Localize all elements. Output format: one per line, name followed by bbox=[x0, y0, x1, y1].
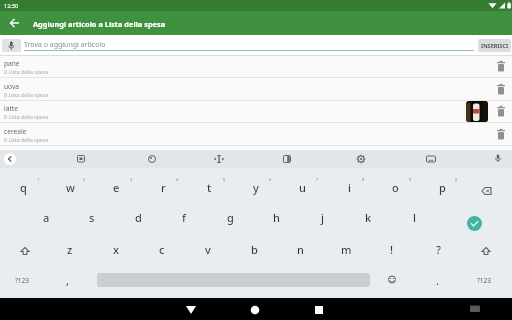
button[interactable] bbox=[494, 104, 508, 119]
button[interactable] bbox=[467, 216, 482, 231]
staticText: n bbox=[297, 242, 304, 257]
button[interactable]: uova bbox=[0, 78, 512, 101]
staticText: 2 bbox=[83, 177, 86, 182]
button[interactable] bbox=[380, 266, 404, 294]
button[interactable]: p bbox=[422, 173, 462, 201]
button[interactable] bbox=[494, 127, 508, 142]
button[interactable]: s bbox=[72, 203, 112, 231]
button[interactable] bbox=[6, 15, 23, 31]
staticText: 6 bbox=[269, 177, 272, 182]
staticText: 5 bbox=[223, 177, 226, 182]
button[interactable]: j bbox=[302, 203, 342, 231]
button[interactable] bbox=[2, 39, 21, 52]
staticText: Trova o aggiungi articolo bbox=[24, 40, 106, 50]
button[interactable]: pane bbox=[0, 55, 512, 78]
button[interactable]: , bbox=[54, 266, 82, 294]
staticText: 8 bbox=[362, 177, 365, 182]
staticText: uova bbox=[4, 82, 19, 91]
staticText: ! bbox=[390, 242, 394, 257]
button[interactable]: m bbox=[326, 235, 366, 263]
button[interactable]: i bbox=[329, 173, 369, 201]
button[interactable]: ? bbox=[418, 235, 458, 263]
staticText: u bbox=[299, 180, 306, 195]
button[interactable]: e bbox=[96, 173, 136, 201]
staticText: 0 bbox=[455, 177, 458, 182]
button[interactable]: a bbox=[26, 203, 66, 231]
button[interactable]: f bbox=[164, 203, 204, 231]
button[interactable] bbox=[474, 235, 498, 263]
staticText: latte bbox=[4, 104, 18, 113]
staticText: i bbox=[348, 180, 351, 195]
button[interactable]: b bbox=[234, 235, 274, 263]
staticText: v bbox=[205, 242, 211, 257]
staticText: d bbox=[135, 210, 142, 225]
button[interactable] bbox=[13, 235, 37, 263]
button[interactable]: cereale bbox=[0, 123, 512, 146]
staticText: 7 bbox=[316, 177, 319, 182]
staticText: s bbox=[89, 210, 95, 225]
button[interactable] bbox=[494, 59, 508, 74]
button[interactable]: r bbox=[143, 173, 183, 201]
staticText: 4 bbox=[176, 177, 179, 182]
button[interactable]: pasta bbox=[0, 146, 512, 169]
staticText: o bbox=[392, 180, 399, 195]
staticText: k bbox=[365, 210, 372, 225]
button[interactable]: . bbox=[425, 266, 449, 294]
button[interactable] bbox=[4, 153, 16, 165]
staticText: e bbox=[113, 180, 120, 195]
button[interactable]: d bbox=[118, 203, 158, 231]
button[interactable]: z bbox=[50, 235, 90, 263]
button[interactable] bbox=[494, 82, 508, 97]
staticText: w bbox=[66, 180, 75, 195]
staticText: ? bbox=[436, 242, 441, 257]
staticText: , bbox=[66, 273, 70, 288]
button[interactable]: latte bbox=[0, 100, 512, 123]
button[interactable]: o bbox=[375, 173, 415, 201]
staticText: j bbox=[321, 210, 324, 225]
staticText: c bbox=[159, 242, 165, 257]
staticText: 12:30 bbox=[4, 2, 19, 9]
button[interactable]: l bbox=[394, 203, 434, 231]
button[interactable]: w bbox=[50, 173, 90, 201]
button[interactable] bbox=[472, 175, 502, 203]
button[interactable]: n bbox=[280, 235, 320, 263]
staticText: ?123 bbox=[15, 276, 29, 285]
staticText: Aggiungi articolo a Lista della spesa bbox=[33, 19, 166, 29]
button[interactable]: c bbox=[142, 235, 182, 263]
staticText: h bbox=[273, 210, 280, 225]
button[interactable] bbox=[179, 298, 203, 320]
button[interactable]: u bbox=[282, 173, 322, 201]
staticText: l bbox=[413, 210, 416, 225]
staticText: x bbox=[113, 242, 119, 257]
button[interactable] bbox=[307, 298, 331, 320]
button[interactable] bbox=[463, 298, 487, 320]
button[interactable] bbox=[494, 150, 508, 165]
button[interactable]: g bbox=[210, 203, 250, 231]
button[interactable]: ?123 bbox=[466, 266, 502, 294]
staticText: f bbox=[182, 210, 186, 225]
button[interactable]: INSERISCI bbox=[478, 39, 511, 52]
button[interactable]: k bbox=[348, 203, 388, 231]
staticText: cereale bbox=[4, 127, 27, 136]
button[interactable]: x bbox=[96, 235, 136, 263]
button[interactable]: t bbox=[189, 173, 229, 201]
button[interactable]: v bbox=[188, 235, 228, 263]
staticText: Il Lista della spesa bbox=[4, 68, 49, 75]
staticText: Il Lista della spesa bbox=[4, 91, 49, 98]
staticText: 1 bbox=[37, 177, 40, 182]
button[interactable]: ?123 bbox=[4, 266, 40, 294]
staticText: ?123 bbox=[477, 276, 491, 285]
button[interactable]: h bbox=[256, 203, 296, 231]
staticText: m bbox=[341, 242, 352, 257]
button[interactable] bbox=[243, 298, 267, 320]
staticText: 9 bbox=[409, 177, 412, 182]
staticText: y bbox=[253, 180, 259, 195]
staticText: . bbox=[436, 273, 439, 288]
staticText: p bbox=[439, 180, 446, 195]
staticText: z bbox=[67, 242, 73, 257]
staticText: Il Lista della spesa bbox=[4, 113, 49, 120]
button[interactable]: ! bbox=[372, 235, 412, 263]
button[interactable]: y bbox=[236, 173, 276, 201]
button[interactable]: q bbox=[3, 173, 43, 201]
